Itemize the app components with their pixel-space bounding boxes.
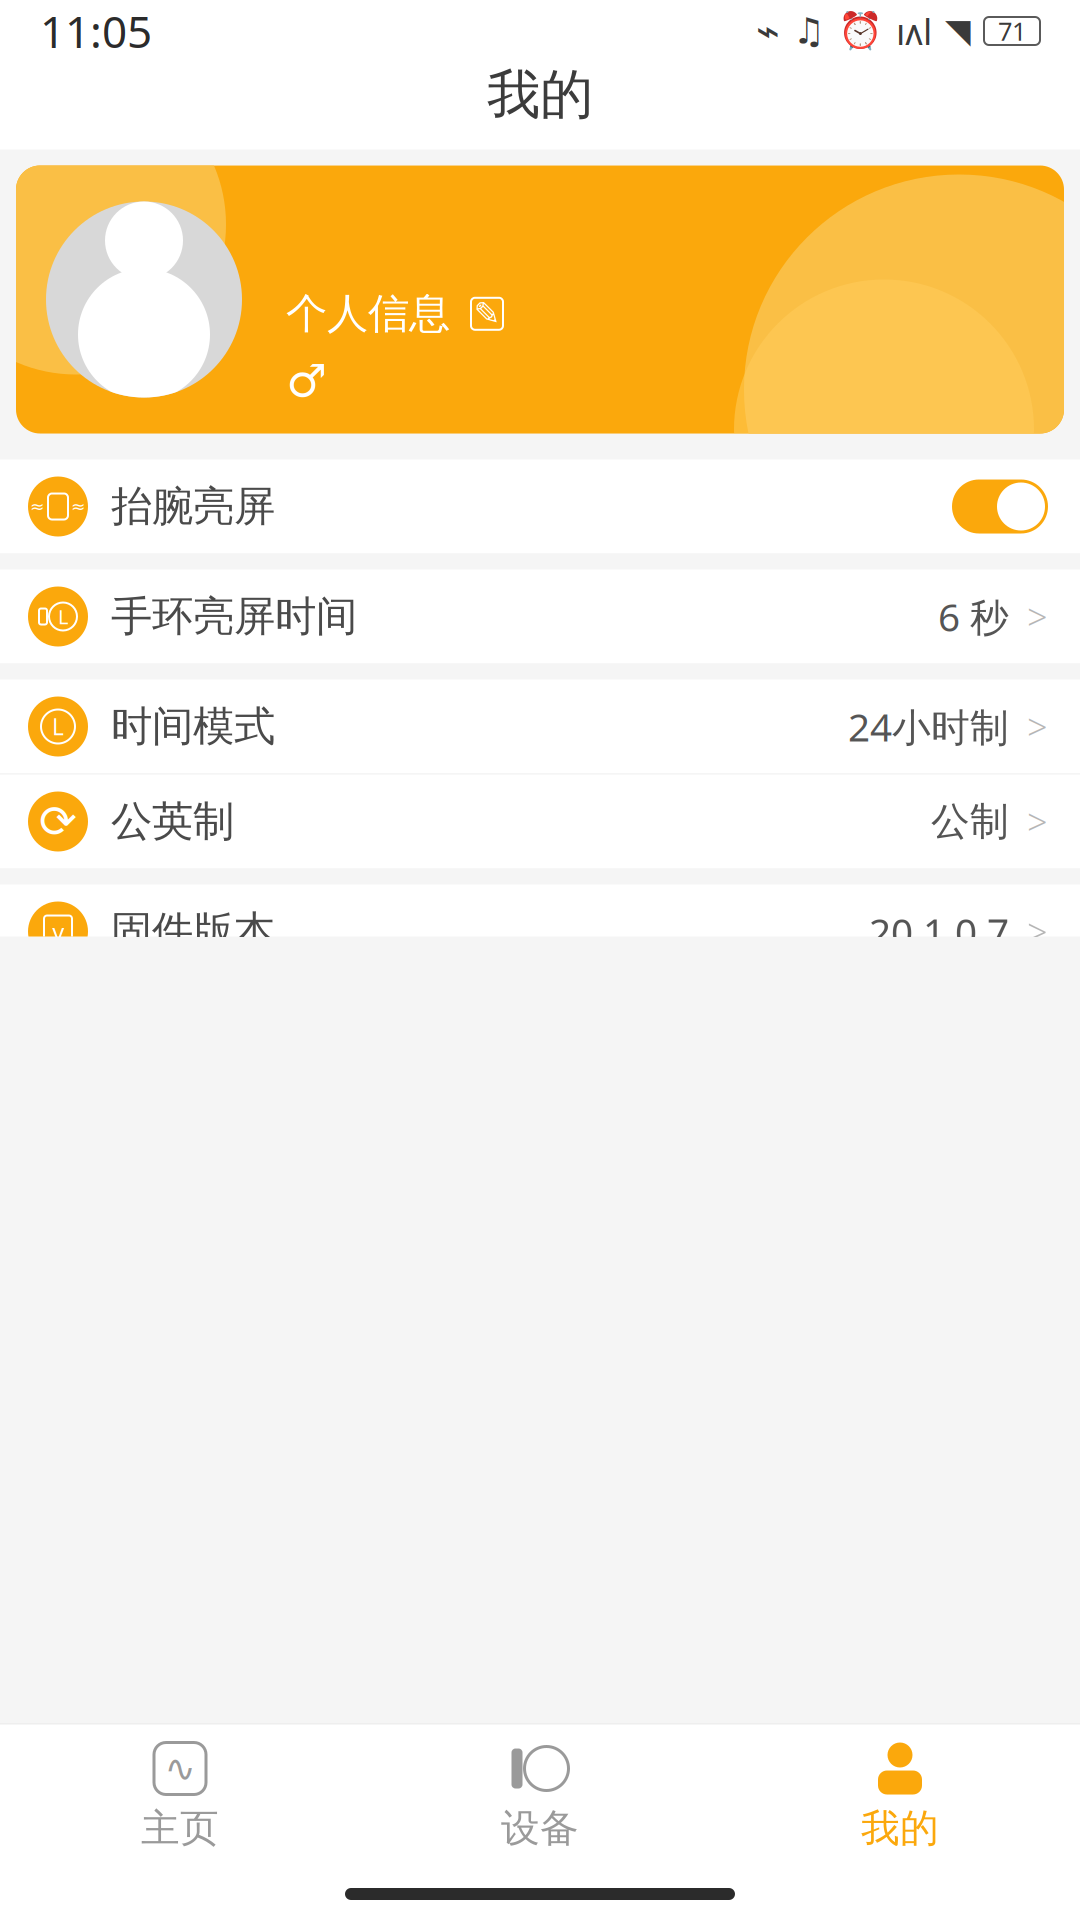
staticText: ∿ (164, 1747, 195, 1790)
button[interactable]: L (0, 569, 1080, 663)
staticText: 时间模式 (111, 701, 275, 752)
staticText: ⏰ (838, 10, 883, 51)
staticText: ✎ (473, 296, 500, 332)
staticText: > (1027, 908, 1048, 955)
staticText: > (1027, 703, 1048, 750)
staticText: 固件版本 (111, 906, 275, 957)
staticText: > (1027, 798, 1048, 845)
staticText: ◥ (945, 12, 971, 50)
staticText: 公英制 (111, 796, 234, 847)
staticText: 11:05 (40, 2, 152, 60)
button[interactable]: ∿ (0, 1724, 360, 1868)
button[interactable]: 个人信息 (0, 165, 1080, 433)
staticText: 24小时制 (848, 701, 1009, 752)
staticText: 6 秒 (938, 591, 1009, 642)
staticText: 个人信息 (286, 288, 450, 339)
button[interactable]: 设备 (360, 1724, 720, 1868)
staticText: ≈ (30, 497, 45, 516)
staticText: > (1027, 593, 1048, 640)
staticText: ♫ (793, 11, 825, 51)
staticText: 抬腕亮屏 (111, 481, 275, 532)
staticText: 主页 (141, 1804, 219, 1852)
staticText: ⌁ (756, 8, 780, 54)
button[interactable]: 我的 (720, 1724, 1080, 1868)
button[interactable]: L (0, 679, 1080, 773)
button[interactable]: ⟳ (0, 774, 1080, 868)
staticText: 我的 (861, 1804, 939, 1852)
staticText: ⟳ (39, 796, 77, 847)
staticText: 71 (998, 14, 1026, 48)
staticText: 公制 (931, 798, 1009, 845)
staticText: L (58, 603, 68, 630)
button[interactable]: ≈ (0, 459, 1080, 553)
staticText: 我的 (487, 62, 593, 127)
staticText: ♂ (286, 355, 327, 407)
button[interactable]: v (0, 884, 1080, 978)
staticText: L (52, 711, 64, 742)
staticText: v (52, 916, 64, 947)
staticText: ıᴧl (896, 7, 932, 55)
staticText: 设备 (501, 1804, 579, 1852)
staticText: ≈ (71, 497, 86, 516)
staticText: 手环亮屏时间 (111, 591, 357, 642)
staticText: 20.1.0.7 (869, 906, 1009, 957)
